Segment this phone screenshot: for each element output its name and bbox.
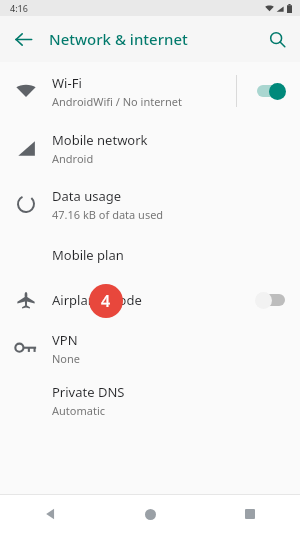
button[interactable]: Airplane mode (0, 278, 300, 322)
staticText: AndroidWifi / No internet (52, 94, 182, 109)
staticText: Private DNS (52, 383, 125, 401)
staticText: 4:16 (10, 2, 28, 14)
button[interactable]: Home (131, 495, 169, 533)
button[interactable]: Mobile plan (0, 232, 300, 278)
button[interactable]: Back (0, 16, 46, 62)
button[interactable]: Switch off (254, 289, 288, 311)
button[interactable]: Recents (231, 495, 269, 533)
staticText: VPN (52, 331, 78, 349)
staticText: Network & internet (49, 29, 188, 49)
button[interactable]: Mobile network (0, 120, 300, 176)
staticText: Android (52, 151, 94, 166)
button[interactable]: VPN (0, 322, 300, 374)
staticText: Mobile plan (52, 246, 124, 264)
staticText: Automatic (52, 403, 105, 418)
staticText: Mobile network (52, 131, 148, 149)
staticText: 47.16 kB of data used (52, 207, 164, 222)
button[interactable]: Private DNS (0, 374, 300, 426)
staticText: Wi-Fi (52, 74, 82, 92)
staticText: 4 (101, 290, 111, 312)
button[interactable]: Data usage (0, 176, 300, 232)
staticText: Data usage (52, 187, 122, 205)
button[interactable]: Back (31, 495, 69, 533)
staticText: None (52, 351, 81, 366)
button[interactable]: 4 notifications (89, 284, 123, 318)
button[interactable]: Wi-Fi (0, 62, 300, 120)
staticText: Airplane mode (52, 291, 142, 309)
button[interactable]: Search (254, 16, 300, 62)
button[interactable]: Switch on (254, 80, 288, 102)
